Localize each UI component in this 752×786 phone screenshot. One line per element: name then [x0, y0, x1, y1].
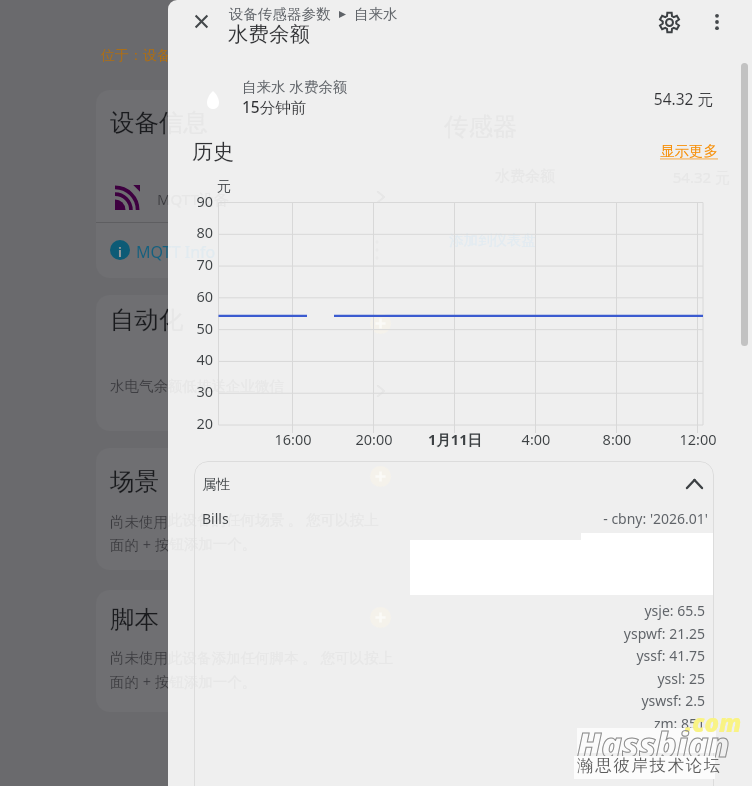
staticText: 面的 + 按钮添加一个。 [168, 671, 257, 691]
staticText: 自来水 水费余额 [242, 76, 348, 96]
staticText: 尚未使用此设备添加任何脚本 。 您可以按上 [168, 647, 394, 667]
staticText: 60 [176, 286, 213, 306]
staticText: 70 [176, 254, 213, 274]
staticText: 位于：设备传感器参数 [101, 47, 241, 65]
staticText: 30 [176, 381, 213, 401]
staticText: 属性 [202, 476, 230, 494]
staticText: 面的 + 按钮添加一个。 [110, 671, 257, 691]
staticText: 4:00 [496, 429, 576, 449]
staticText: 20 [176, 413, 213, 433]
staticText: 自动化 [110, 304, 184, 335]
staticText: 自来水 [354, 5, 398, 23]
staticText: yssf: 41.75 [368, 646, 705, 665]
staticText: yssl: 25 [368, 669, 705, 688]
staticText: 设备信息 [168, 107, 208, 138]
staticText: Bills [202, 509, 229, 528]
staticText: 尚未使用此设备添加任何脚本 。 您可以按上 [110, 647, 394, 667]
staticText: 面的 + 按钮添加一个。 [110, 534, 257, 554]
staticText: 脚本 [110, 604, 159, 635]
staticText: 16:00 [253, 429, 333, 449]
staticText: 54.32 元 [548, 88, 713, 109]
button[interactable]: More options [697, 2, 737, 42]
staticText: 1月11日 [415, 429, 495, 449]
staticText: 添加到仪表盘 [449, 231, 536, 249]
staticText: 历史 [192, 139, 234, 165]
staticText: 90 [176, 191, 213, 211]
staticText: - cbny: '2026.01' [468, 509, 708, 528]
staticText: 50 [176, 318, 213, 338]
staticText: MQTT Info [136, 241, 216, 263]
staticText: 场景 [110, 466, 159, 497]
staticText: 水费余额 [495, 167, 555, 186]
staticText: 设备信息 [110, 107, 208, 138]
staticText: Hassbian [577, 721, 730, 767]
staticText: 8:00 [577, 429, 657, 449]
staticText: 40 [176, 349, 213, 369]
button[interactable]: 显示更多 [646, 138, 718, 164]
button[interactable]: 属性 [194, 461, 714, 509]
staticText: 水电气余额低推送企业微信 [110, 377, 284, 395]
staticText: .com [685, 706, 742, 739]
staticText: 显示更多 [660, 142, 718, 160]
staticText: 设备传感器参数 [229, 5, 331, 23]
staticText: 尚未使用此设备的任何场景 。 您可以按上 [110, 511, 379, 531]
staticText: ysje: 65.5 [368, 601, 705, 620]
staticText: 15分钟前 [242, 96, 307, 117]
staticText: zm: 851 [368, 714, 705, 733]
staticText: 20:00 [334, 429, 414, 449]
staticText: yswsf: 2.5 [368, 691, 705, 710]
button[interactable]: Settings [649, 2, 689, 42]
staticText: 元 [217, 178, 231, 196]
staticText: 瀚思彼岸技术论坛 [577, 755, 722, 776]
staticText: i [118, 243, 122, 261]
staticText: yspwf: 21.25 [368, 624, 705, 643]
staticText: 水电气余额低推送企业微信 [168, 377, 284, 395]
staticText: MQTT设备 [168, 189, 229, 209]
staticText: 尚未使用此设备的任何场景 。 您可以按上 [168, 509, 379, 529]
staticText: 12:00 [658, 429, 738, 449]
staticText: MQTT Info [168, 241, 216, 263]
staticText: 80 [176, 222, 213, 242]
button[interactable]: Close [181, 1, 221, 41]
staticText: 传感器 [444, 111, 518, 142]
staticText: 水费余额 [228, 21, 310, 47]
staticText: MQTT设备 [157, 189, 229, 209]
staticText: 面的 + 按钮添加一个。 [168, 533, 257, 553]
